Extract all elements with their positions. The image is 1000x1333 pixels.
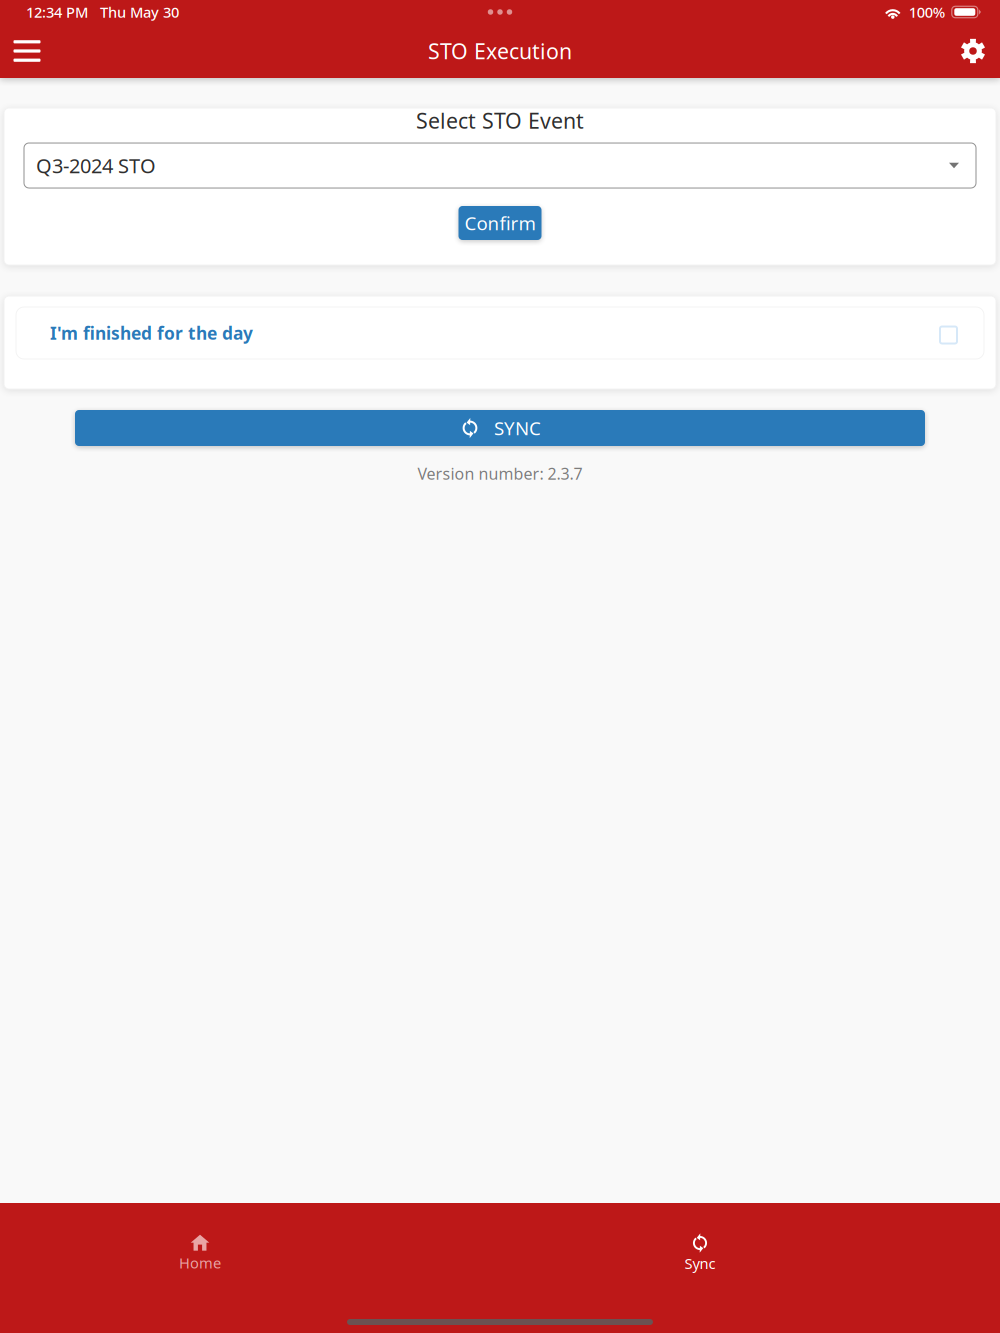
staticText: Confirm	[464, 211, 535, 235]
staticText: Q3-2024 STO	[36, 152, 156, 179]
button[interactable]: Home	[0, 1203, 400, 1307]
staticText: 12:34 PM	[26, 2, 88, 22]
staticText: Sync	[684, 1253, 715, 1273]
button[interactable]: I'm finished for the day	[4, 296, 996, 359]
staticText: Select STO Event	[416, 106, 584, 135]
button[interactable]: Confirm	[458, 206, 541, 240]
button[interactable]: Sync	[400, 1203, 1000, 1306]
button[interactable]: Settings	[946, 24, 1000, 78]
button[interactable]: SYNC	[75, 410, 925, 446]
staticText: Home	[179, 1253, 221, 1272]
staticText: Version number: 2.3.7	[417, 463, 582, 484]
staticText: 100%	[909, 2, 945, 22]
staticText: STO Execution	[428, 37, 572, 65]
staticText: I'm finished for the day	[50, 321, 253, 344]
staticText: SYNC	[494, 416, 541, 440]
staticText: Thu May 30	[100, 2, 179, 22]
button[interactable]: Menu	[0, 24, 54, 78]
